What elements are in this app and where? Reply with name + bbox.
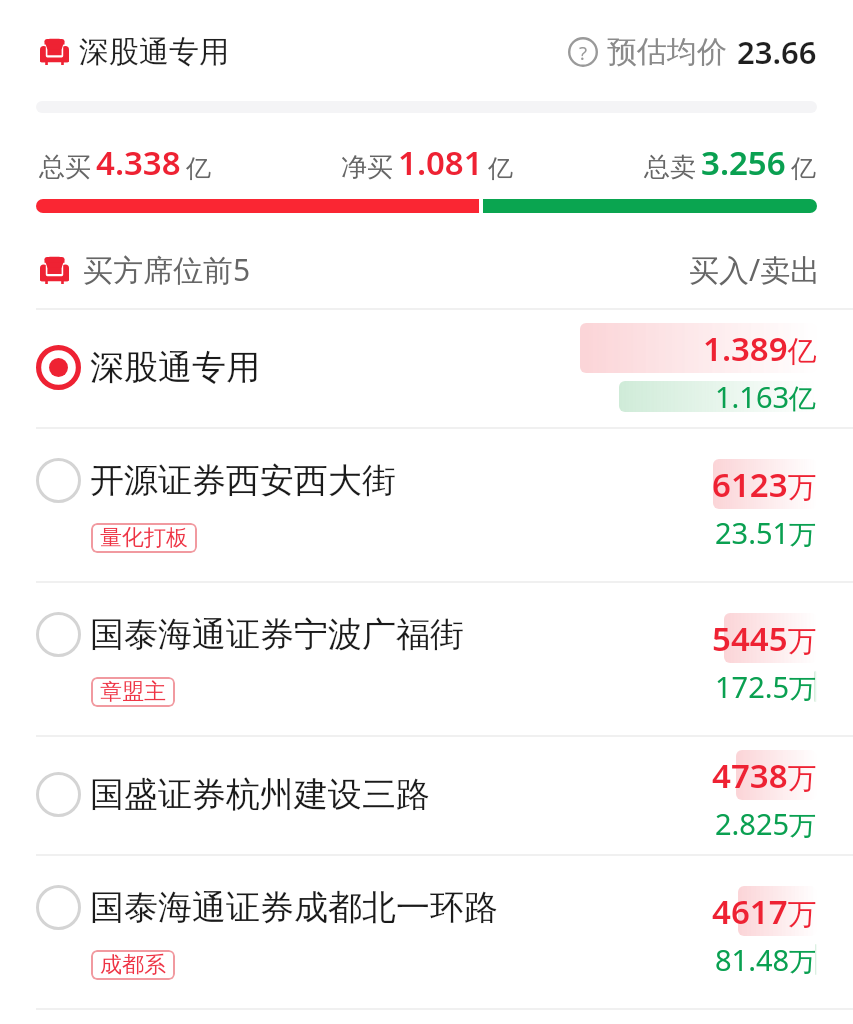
button[interactable]: 国泰海通证券成都北一环路 — [0, 856, 853, 1008]
staticText: 买入/卖出 — [689, 249, 821, 290]
staticText: 6123万 — [712, 462, 817, 507]
staticText: 5445万 — [712, 616, 817, 661]
staticText: 1.081 — [398, 140, 483, 185]
button[interactable]: 深股通专用 — [0, 310, 853, 427]
staticText: 亿 — [791, 153, 816, 184]
button[interactable]: 国盛证券杭州建设三路 — [0, 737, 853, 854]
staticText: 总买 — [39, 151, 91, 184]
staticText: 81.48万 — [715, 940, 817, 979]
staticText: 深股通专用 — [90, 346, 260, 389]
staticText: 3.256 — [701, 140, 786, 185]
staticText: 国泰海通证券宁波广福街 — [90, 613, 464, 656]
staticText: 2.825万 — [715, 804, 817, 843]
staticText: 总卖 — [644, 151, 696, 184]
staticText: 量化打板 — [100, 524, 188, 552]
staticText: 4.338 — [96, 140, 181, 185]
button[interactable]: 国泰海通证券宁波广福街 — [0, 583, 853, 735]
staticText: ? — [579, 40, 588, 65]
staticText: 亿 — [488, 153, 513, 184]
staticText: 172.5万 — [715, 667, 817, 706]
staticText: 成都系 — [100, 951, 166, 979]
staticText: 4617万 — [712, 889, 817, 934]
staticText: 净买 — [341, 151, 393, 184]
staticText: 23.66 — [737, 31, 817, 73]
button[interactable]: 深股通专用 — [0, 0, 853, 113]
staticText: 国泰海通证券成都北一环路 — [90, 886, 498, 929]
staticText: 开源证券西安西大街 — [90, 459, 396, 502]
staticText: 23.51万 — [715, 513, 817, 552]
button[interactable]: 开源证券西安西大街 — [0, 429, 853, 581]
staticText: 4738万 — [712, 753, 817, 798]
staticText: 1.163亿 — [715, 377, 817, 416]
staticText: 深股通专用 — [79, 33, 229, 71]
staticText: 章盟主 — [100, 678, 166, 706]
staticText: 国盛证券杭州建设三路 — [90, 773, 430, 816]
staticText: 预估均价 — [607, 33, 727, 71]
staticText: 亿 — [186, 153, 211, 184]
staticText: 买方席位前5 — [83, 249, 251, 290]
staticText: 1.389亿 — [703, 326, 817, 371]
